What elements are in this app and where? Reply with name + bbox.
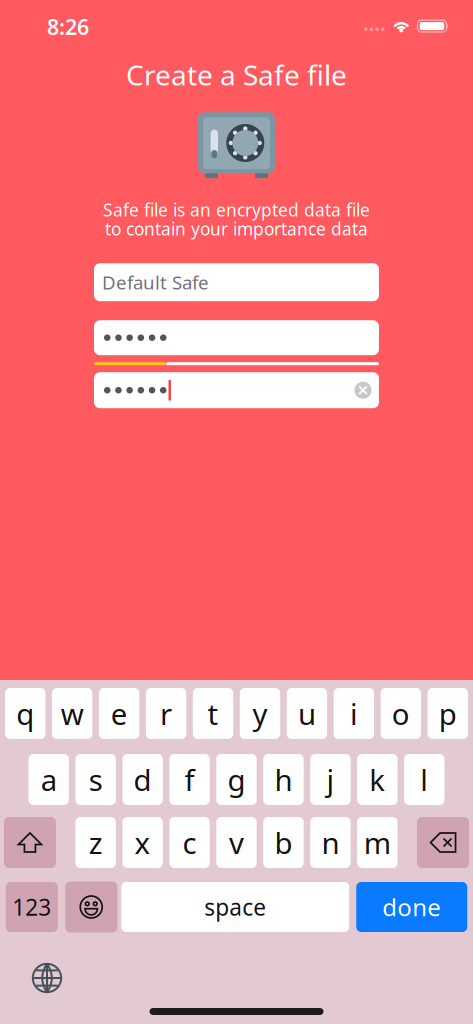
staticText: b <box>274 823 292 862</box>
button[interactable]: a <box>28 754 69 805</box>
button[interactable]: Switch keyboard <box>22 953 72 1003</box>
button[interactable]: 123 <box>6 882 58 932</box>
button[interactable]: s <box>75 754 116 805</box>
staticText: done <box>382 891 441 923</box>
button[interactable]: x <box>122 817 163 868</box>
button[interactable]: l <box>404 754 444 805</box>
button[interactable]: f <box>169 754 210 805</box>
staticText: e <box>111 694 128 733</box>
staticText: s <box>89 760 103 799</box>
staticText: n <box>321 823 339 862</box>
staticText: j <box>326 760 334 799</box>
button[interactable]: done <box>356 882 467 932</box>
button[interactable] <box>94 320 379 355</box>
staticText: f <box>185 760 195 799</box>
staticText: Create a Safe file <box>126 56 347 93</box>
staticText: c <box>182 823 196 862</box>
button[interactable]: Delete <box>417 817 469 868</box>
button[interactable]: q <box>5 688 45 739</box>
button[interactable]: c <box>169 817 210 868</box>
staticText: Default Safe <box>102 270 209 295</box>
staticText: 123 <box>12 892 51 922</box>
staticText: to contain your importance data <box>105 217 368 240</box>
button[interactable]: b <box>263 817 304 868</box>
staticText: v <box>229 823 244 862</box>
button[interactable]: Shift <box>4 817 56 868</box>
staticText: l <box>420 760 428 799</box>
staticText: x <box>135 823 151 862</box>
staticText: z <box>89 823 103 862</box>
staticText: i <box>350 694 358 733</box>
staticText: 8:26 <box>47 13 89 41</box>
button[interactable]: z <box>75 817 116 868</box>
staticText: t <box>207 694 218 733</box>
button[interactable]: t <box>193 688 233 739</box>
button[interactable]: n <box>310 817 351 868</box>
button[interactable]: y <box>240 688 280 739</box>
button[interactable]: Emoji <box>65 881 117 932</box>
button[interactable]: v <box>216 817 257 868</box>
staticText: a <box>41 760 57 799</box>
staticText: u <box>298 694 316 733</box>
staticText: o <box>392 694 410 733</box>
staticText: k <box>369 760 385 799</box>
staticText: y <box>252 694 267 733</box>
button[interactable]: u <box>287 688 327 739</box>
button[interactable]: Default Safe <box>94 263 379 301</box>
button[interactable]: h <box>263 754 304 805</box>
staticText: w <box>61 694 84 733</box>
staticText: h <box>274 760 292 799</box>
button[interactable]: r <box>146 688 186 739</box>
button[interactable]: k <box>357 754 397 805</box>
button[interactable]: p <box>428 688 468 739</box>
staticText: q <box>16 694 34 733</box>
staticText: r <box>160 694 172 733</box>
button[interactable]: d <box>122 754 163 805</box>
button[interactable]: space <box>121 882 349 932</box>
staticText: p <box>439 694 457 733</box>
button[interactable]: m <box>357 817 397 868</box>
button[interactable]: j <box>310 754 351 805</box>
staticText: space <box>204 892 266 922</box>
staticText: g <box>227 760 245 799</box>
staticText: Safe file is an encrypted data file <box>103 198 370 221</box>
button[interactable] <box>94 372 379 408</box>
button[interactable]: g <box>216 754 257 805</box>
staticText: m <box>364 823 391 862</box>
button[interactable]: w <box>52 688 92 739</box>
button[interactable]: i <box>334 688 374 739</box>
button[interactable]: e <box>99 688 139 739</box>
staticText: d <box>134 760 152 799</box>
button[interactable]: o <box>381 688 421 739</box>
